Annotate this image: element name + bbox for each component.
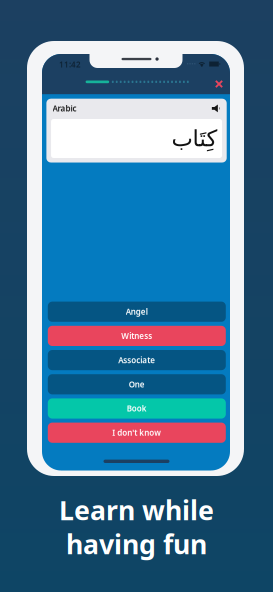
staticText: I don't know [112,427,161,438]
staticText: Associate [118,355,155,365]
button[interactable]: I don't know [48,423,226,443]
staticText: having fun [66,526,207,562]
button[interactable]: Angel [48,302,226,322]
staticText: Witness [121,331,152,341]
staticText: Book [127,403,147,414]
staticText: كِتَاب [171,126,217,151]
button[interactable]: Witness [48,326,226,346]
button[interactable]: Play pronunciation [212,104,221,112]
staticText: Angel [126,306,148,317]
staticText: Arabic [53,103,77,114]
button[interactable]: Book [48,398,226,419]
staticText: One [129,379,145,390]
button[interactable]: One [48,374,226,394]
button[interactable]: Associate [48,350,226,370]
staticText: 11:42 [59,59,81,70]
staticText: Learn while [59,492,214,528]
